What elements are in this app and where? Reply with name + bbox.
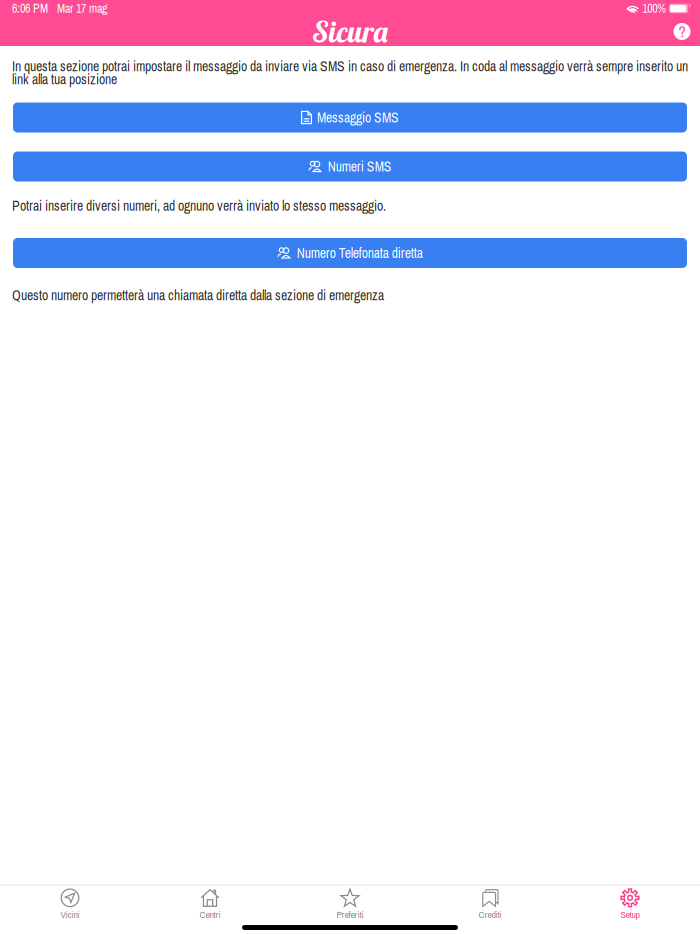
staticText: Sicura (312, 13, 388, 50)
button[interactable]: Aiuto (670, 19, 694, 43)
staticText: 100% (639, 0, 669, 17)
button[interactable]: Numeri SMS (13, 151, 687, 181)
button[interactable]: Crediti (420, 885, 560, 934)
staticText: Numero Telefonata diretta (297, 244, 423, 262)
staticText: ? (678, 21, 685, 42)
button[interactable]: Setup (560, 885, 700, 934)
staticText: Messaggio SMS (317, 108, 399, 127)
staticText: Vicini (60, 908, 79, 921)
staticText: Crediti (478, 908, 501, 921)
staticText: Potrai inserire diversi numeri, ad ognun… (12, 196, 386, 215)
button[interactable]: Preferiti (280, 885, 420, 934)
staticText: Mar 17 mag (57, 0, 107, 17)
button[interactable]: Numero Telefonata diretta (13, 238, 687, 268)
staticText: In questa sezione potrai impostare il me… (12, 57, 688, 88)
staticText: Preferiti (336, 908, 363, 921)
button[interactable]: Vicini (0, 885, 140, 934)
staticText: Setup (620, 908, 639, 921)
staticText: Centri (199, 908, 220, 921)
button[interactable]: Messaggio SMS (13, 102, 687, 132)
staticText: 6:06 PM (12, 0, 48, 17)
button[interactable]: Centri (140, 885, 280, 934)
staticText: Numeri SMS (328, 157, 392, 176)
staticText: Questo numero permetterà una chiamata di… (12, 286, 384, 304)
